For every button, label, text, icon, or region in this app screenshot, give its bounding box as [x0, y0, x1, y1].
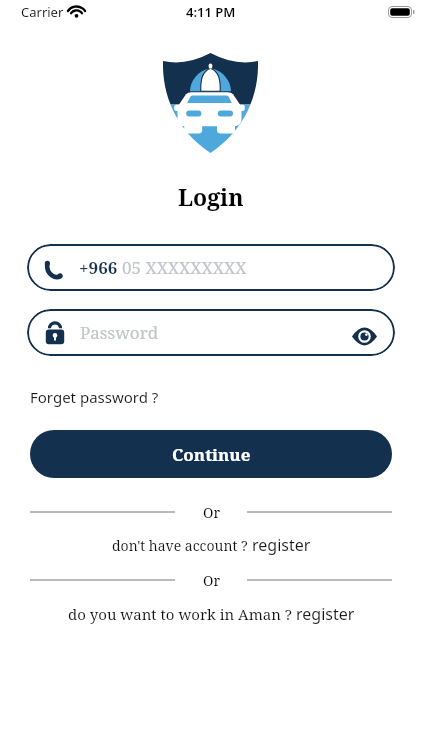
button[interactable] [352, 328, 377, 345]
staticText: 4:11 PM [186, 3, 236, 21]
staticText: Or [203, 503, 220, 519]
button[interactable]: register [296, 603, 355, 625]
staticText: don't have account ? [112, 536, 252, 555]
staticText: Carrier [21, 3, 64, 21]
staticText: do you want to work in Aman ? [68, 604, 296, 624]
staticText: Login [178, 181, 244, 212]
staticText: Password [80, 321, 159, 344]
button[interactable]: Forget password ? [30, 387, 159, 407]
button[interactable]: +966 [27, 244, 395, 291]
staticText: register [296, 603, 355, 625]
staticText: Continue [172, 443, 251, 466]
button[interactable]: Password [27, 309, 395, 356]
staticText: Or [203, 571, 220, 587]
staticText: 05 XXXXXXXXX [122, 256, 247, 279]
staticText: +966 [79, 256, 118, 279]
staticText: Forget password ? [30, 387, 159, 407]
staticText: register [252, 534, 311, 556]
button[interactable]: register [252, 534, 311, 556]
button[interactable]: Continue [30, 430, 392, 478]
